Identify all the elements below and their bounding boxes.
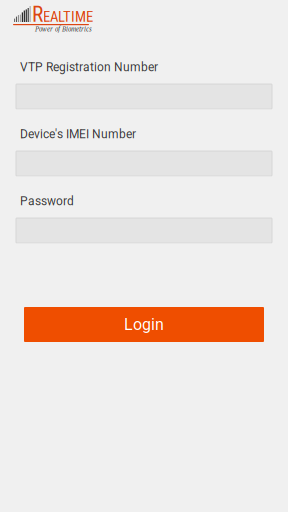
staticText: R <box>32 2 43 27</box>
staticText: Power of Biometrics <box>35 24 92 33</box>
staticText: Login <box>124 315 164 334</box>
staticText: EALTIME <box>43 8 93 25</box>
staticText: Device's IMEI Number <box>20 127 136 141</box>
button[interactable]: Login <box>24 307 264 342</box>
staticText: Password <box>20 194 74 208</box>
staticText: VTP Registration Number <box>20 60 158 74</box>
